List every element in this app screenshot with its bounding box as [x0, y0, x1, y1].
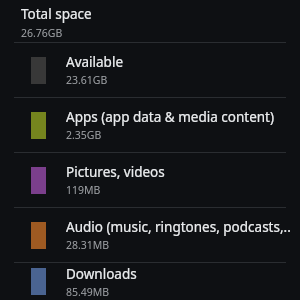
staticText: Apps (app data & media content): [66, 108, 275, 126]
staticText: 85.49MB: [66, 285, 110, 299]
button[interactable]: Available: [0, 43, 300, 97]
button[interactable]: Pictures, videos: [0, 153, 300, 207]
button[interactable]: Audio (music, ringtones, podcasts,..: [0, 208, 300, 262]
button[interactable]: Downloads: [0, 263, 300, 300]
staticText: 2.35GB: [66, 128, 102, 142]
staticText: Audio (music, ringtones, podcasts,..: [66, 218, 291, 236]
staticText: 119MB: [66, 183, 101, 197]
staticText: Downloads: [66, 265, 137, 283]
staticText: Total space: [21, 5, 92, 23]
staticText: 26.76GB: [21, 26, 63, 40]
button[interactable]: Apps (app data & media content): [0, 98, 300, 152]
staticText: Pictures, videos: [66, 163, 165, 181]
staticText: 23.61GB: [66, 73, 108, 87]
staticText: Available: [66, 53, 123, 71]
staticText: 28.31MB: [66, 238, 110, 252]
